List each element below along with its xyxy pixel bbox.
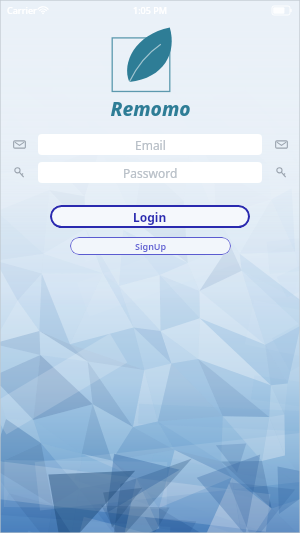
button[interactable]: Email xyxy=(0,134,38,155)
staticText: Remomo xyxy=(110,96,191,122)
staticText: Password xyxy=(123,165,178,181)
staticText: 1:05 PM xyxy=(133,4,167,16)
button[interactable]: Password xyxy=(38,162,262,183)
staticText: Login xyxy=(133,209,167,225)
button[interactable]: Email xyxy=(262,134,300,155)
staticText: Email xyxy=(135,137,166,153)
button[interactable]: Email xyxy=(38,134,262,155)
button[interactable]: Password xyxy=(0,162,38,183)
button[interactable]: SignUp xyxy=(70,237,231,255)
button[interactable]: Login xyxy=(50,205,250,228)
button[interactable]: Password xyxy=(262,162,300,183)
staticText: SignUp xyxy=(135,240,167,252)
staticText: Carrier xyxy=(7,4,37,16)
